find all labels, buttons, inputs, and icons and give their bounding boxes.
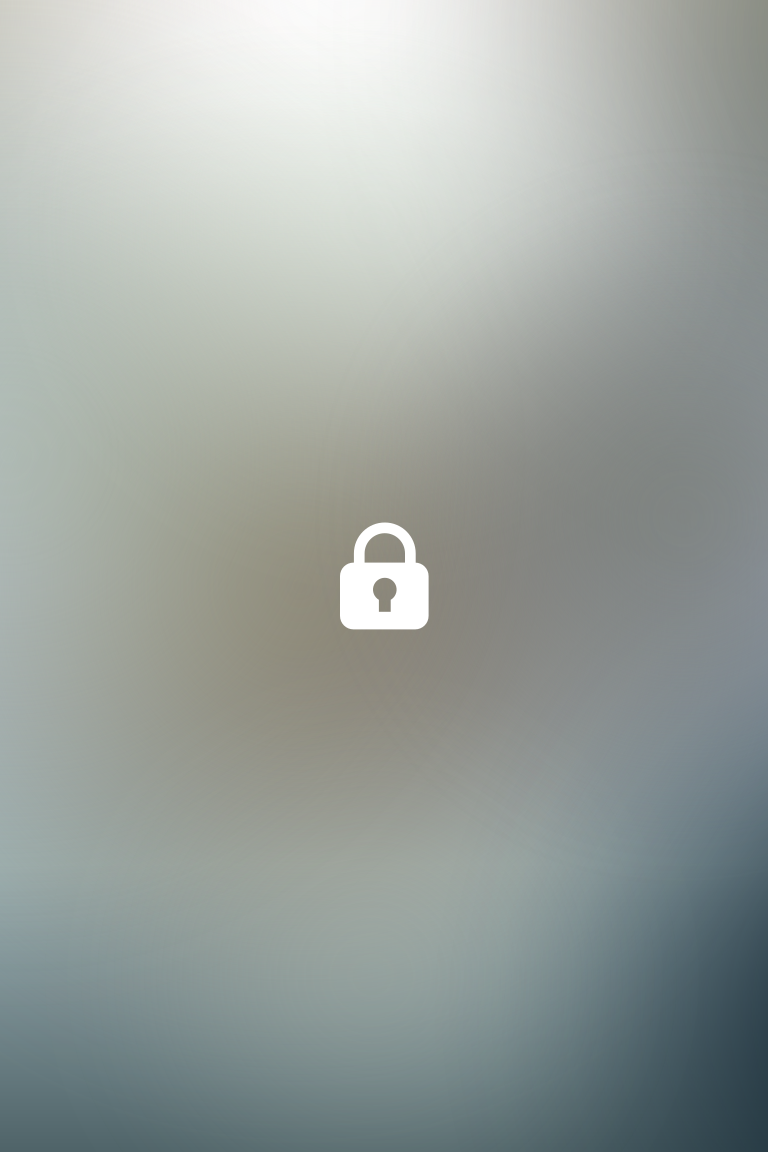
button[interactable]: Unlock: [340, 522, 429, 629]
